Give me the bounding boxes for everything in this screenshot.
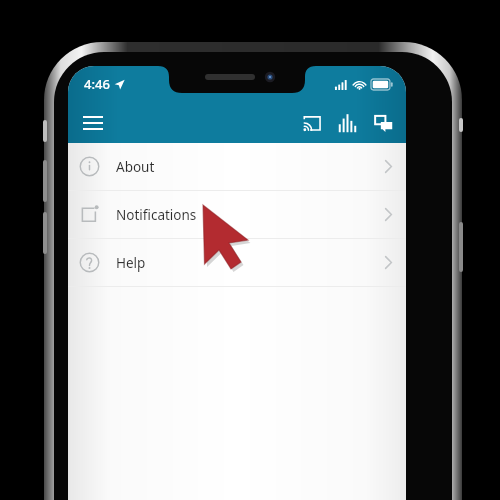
staticText: 4:46 [84, 75, 110, 93]
staticText: Notifications [116, 206, 197, 224]
staticText: About [116, 158, 155, 176]
button[interactable]: Notifications [68, 191, 406, 238]
staticText: Help [116, 254, 146, 272]
button[interactable]: Chats [365, 105, 401, 141]
button[interactable]: Open navigation menu [74, 104, 112, 142]
button[interactable]: Equalizer [329, 105, 365, 141]
button[interactable]: About [68, 143, 406, 190]
button[interactable]: Cast [293, 105, 329, 141]
button[interactable]: Help [68, 239, 406, 286]
